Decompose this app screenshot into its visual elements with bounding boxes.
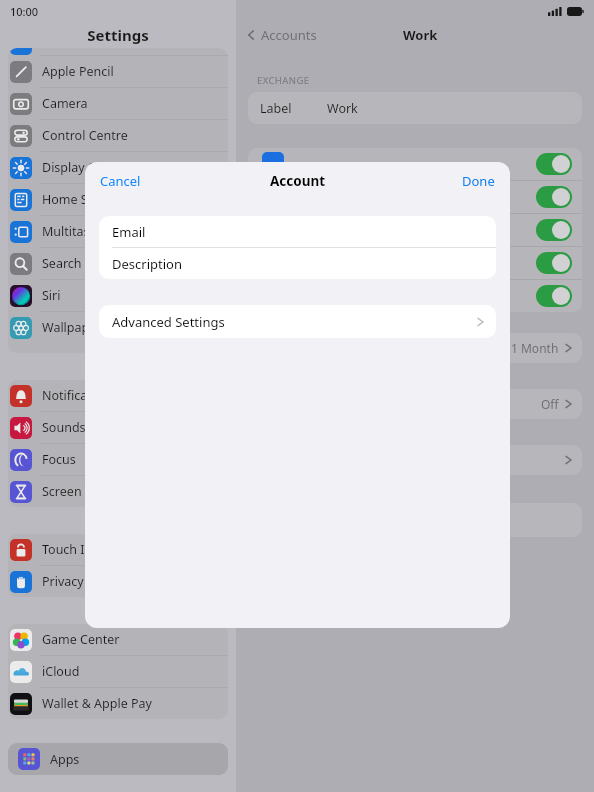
staticText: Apps (50, 751, 80, 768)
button[interactable]: Email (99, 216, 496, 247)
button[interactable]: Home Screen & App Library (8, 184, 228, 215)
staticText: EXCHANGE (257, 74, 310, 87)
staticText: Settings (87, 25, 149, 45)
staticText: Apple Pencil (42, 63, 114, 80)
staticText: Control Centre (42, 127, 128, 144)
button[interactable] (248, 214, 582, 246)
staticText: Work (403, 26, 438, 44)
button[interactable]: Camera (8, 88, 228, 119)
button[interactable]: Off (248, 389, 582, 419)
button[interactable]: Screen Time (8, 476, 228, 507)
button[interactable]: Notifications (8, 380, 228, 411)
button[interactable]: Siri (8, 280, 228, 311)
staticText: iCloud (42, 663, 80, 680)
button[interactable]: 1 Month (248, 333, 582, 363)
staticText: Label (260, 100, 292, 117)
staticText: Accounts (261, 26, 317, 44)
button[interactable]: Label (248, 92, 582, 124)
button[interactable]: Touch ID & Passcode (8, 534, 228, 565)
staticText: Notifications (42, 387, 117, 404)
staticText: Done (462, 172, 495, 190)
staticText: Screen Time (42, 483, 114, 500)
staticText: Email (112, 223, 146, 241)
staticText: Description (112, 255, 182, 273)
staticText: Home Screen & App Library (42, 191, 204, 208)
staticText: Siri (42, 287, 61, 304)
staticText: Touch ID & Passcode (42, 541, 165, 558)
staticText: Advanced Settings (112, 313, 225, 331)
staticText: Cancel (100, 172, 141, 190)
button[interactable]: Search (8, 248, 228, 279)
button[interactable]: Privacy & Security (8, 566, 228, 597)
staticText: Wallpaper (42, 319, 102, 336)
staticText: Game Center (42, 631, 120, 648)
button[interactable]: iCloud (8, 656, 228, 687)
button[interactable] (248, 181, 582, 213)
button[interactable]: Done (447, 166, 510, 196)
button[interactable]: Cancel (85, 166, 156, 196)
button[interactable]: Accounts (244, 26, 317, 44)
staticText: Search (42, 255, 82, 272)
button[interactable]: Apple Pencil (8, 56, 228, 87)
staticText: Off (541, 396, 559, 412)
button[interactable]: Display & Brightness (8, 152, 228, 183)
button[interactable]: Game Center (8, 624, 228, 655)
button[interactable]: Wallet & Apple Pay (8, 688, 228, 719)
staticText: Wallet & Apple Pay (42, 695, 152, 712)
button[interactable]: Wallpaper (8, 312, 228, 343)
button[interactable]: Focus (8, 444, 228, 475)
staticText: Privacy & Security (42, 573, 147, 590)
button[interactable]: Sounds (8, 412, 228, 443)
button[interactable]: Control Centre (8, 120, 228, 151)
staticText: Display & Brightness (42, 159, 164, 176)
staticText: Camera (42, 95, 88, 112)
staticText: Multitasking & Gestures (42, 223, 183, 240)
staticText: 1 Month (511, 340, 559, 356)
staticText: Sounds (42, 419, 86, 436)
staticText: Focus (42, 451, 76, 468)
button[interactable]: Multitasking & Gestures (8, 216, 228, 247)
button[interactable]: Advanced Settings (99, 305, 496, 338)
staticText: Account (270, 172, 326, 190)
button[interactable] (248, 445, 582, 475)
staticText: 10:00 (10, 4, 39, 19)
button[interactable] (248, 148, 582, 180)
button[interactable] (248, 280, 582, 312)
button[interactable] (248, 503, 582, 537)
button[interactable]: Apps (8, 743, 228, 775)
button[interactable] (248, 247, 582, 279)
staticText: Work (327, 100, 358, 117)
button[interactable]: Description (99, 248, 496, 279)
